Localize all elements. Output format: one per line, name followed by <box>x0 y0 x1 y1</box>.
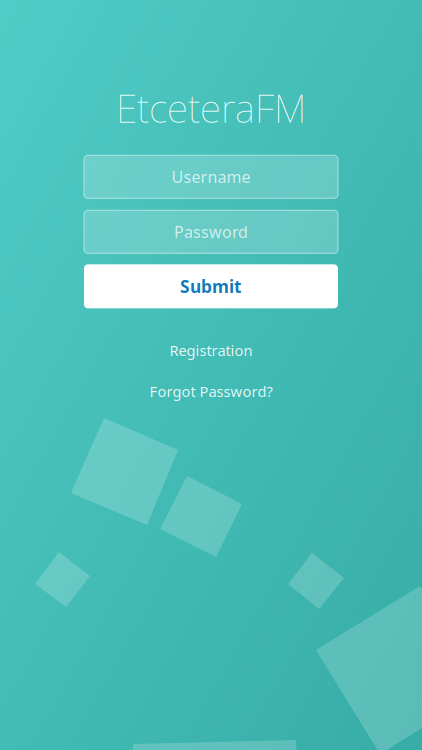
staticText: Registration <box>169 341 252 360</box>
staticText: Username <box>171 166 250 187</box>
button[interactable]: Password <box>84 210 338 253</box>
button[interactable]: Forgot Password? <box>84 379 338 403</box>
staticText: EtceteraFM <box>116 82 306 133</box>
button[interactable]: Submit <box>84 264 338 308</box>
staticText: Forgot Password? <box>149 382 272 401</box>
staticText: Password <box>174 221 248 242</box>
button[interactable]: Registration <box>84 338 338 362</box>
staticText: Submit <box>180 275 242 298</box>
button[interactable]: Username <box>84 155 338 198</box>
